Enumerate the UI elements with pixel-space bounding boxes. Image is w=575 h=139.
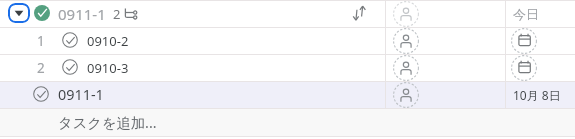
- staticText: 1: [37, 32, 45, 50]
- button[interactable]: Mark complete: [62, 32, 78, 48]
- button[interactable]: Sort: [352, 5, 368, 21]
- staticText: 今日: [513, 6, 539, 22]
- button[interactable]: Collapse group: [8, 3, 30, 23]
- button[interactable]: Assignee: [393, 82, 419, 108]
- staticText: 0910-3: [87, 59, 129, 77]
- button[interactable]: Completed: [34, 5, 50, 21]
- button[interactable]: Assignee: [393, 28, 419, 54]
- staticText: 2: [37, 59, 45, 77]
- button[interactable]: Due date: [511, 28, 537, 54]
- staticText: タスクを追加...: [58, 113, 157, 133]
- staticText: 2: [113, 5, 121, 23]
- button[interactable]: 1: [0, 28, 575, 54]
- button[interactable]: Assignee: [393, 1, 419, 27]
- staticText: 0911-1: [58, 85, 104, 105]
- button[interactable]: タスクを追加...: [0, 109, 575, 136]
- button[interactable]: 2: [0, 55, 575, 81]
- button[interactable]: Mark complete: [33, 86, 49, 102]
- staticText: 0911-1: [58, 4, 106, 24]
- button[interactable]: Assignee: [393, 55, 419, 81]
- button[interactable]: Mark complete: [0, 82, 575, 108]
- staticText: 0910-2: [87, 32, 129, 50]
- button[interactable]: Due date: [511, 55, 537, 81]
- button[interactable]: Mark complete: [62, 59, 78, 75]
- staticText: 10月 8日: [513, 87, 561, 103]
